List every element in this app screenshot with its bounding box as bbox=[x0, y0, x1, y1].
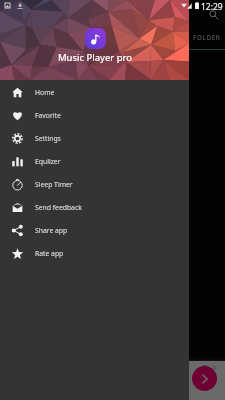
staticText: Favorite bbox=[35, 111, 61, 120]
button[interactable]: Settings bbox=[0, 127, 189, 150]
button[interactable]: Sleep Timer bbox=[0, 173, 189, 196]
staticText: Home bbox=[35, 88, 55, 97]
staticText: Send feedback bbox=[35, 203, 82, 212]
button[interactable]: Send feedback bbox=[0, 196, 189, 219]
staticText: 12:29 bbox=[201, 1, 223, 12]
button[interactable]: FOLDER bbox=[189, 26, 225, 50]
button[interactable]: Home bbox=[0, 81, 189, 104]
staticText: Rate app bbox=[35, 249, 64, 258]
staticText: Equlizer bbox=[35, 157, 61, 166]
button[interactable]: Rate app bbox=[0, 242, 189, 265]
button[interactable]: Search bbox=[207, 8, 220, 21]
button[interactable]: Favorite bbox=[0, 104, 189, 127]
staticText: Settings bbox=[35, 134, 61, 143]
staticText: Sleep Timer bbox=[35, 180, 73, 189]
staticText: FOLDER bbox=[193, 33, 221, 42]
staticText: Share app bbox=[35, 226, 68, 235]
staticText: Music Player pro bbox=[58, 51, 132, 64]
button[interactable]: Share app bbox=[0, 219, 189, 242]
button[interactable]: Equlizer bbox=[0, 150, 189, 173]
button[interactable]: Next bbox=[192, 366, 217, 391]
